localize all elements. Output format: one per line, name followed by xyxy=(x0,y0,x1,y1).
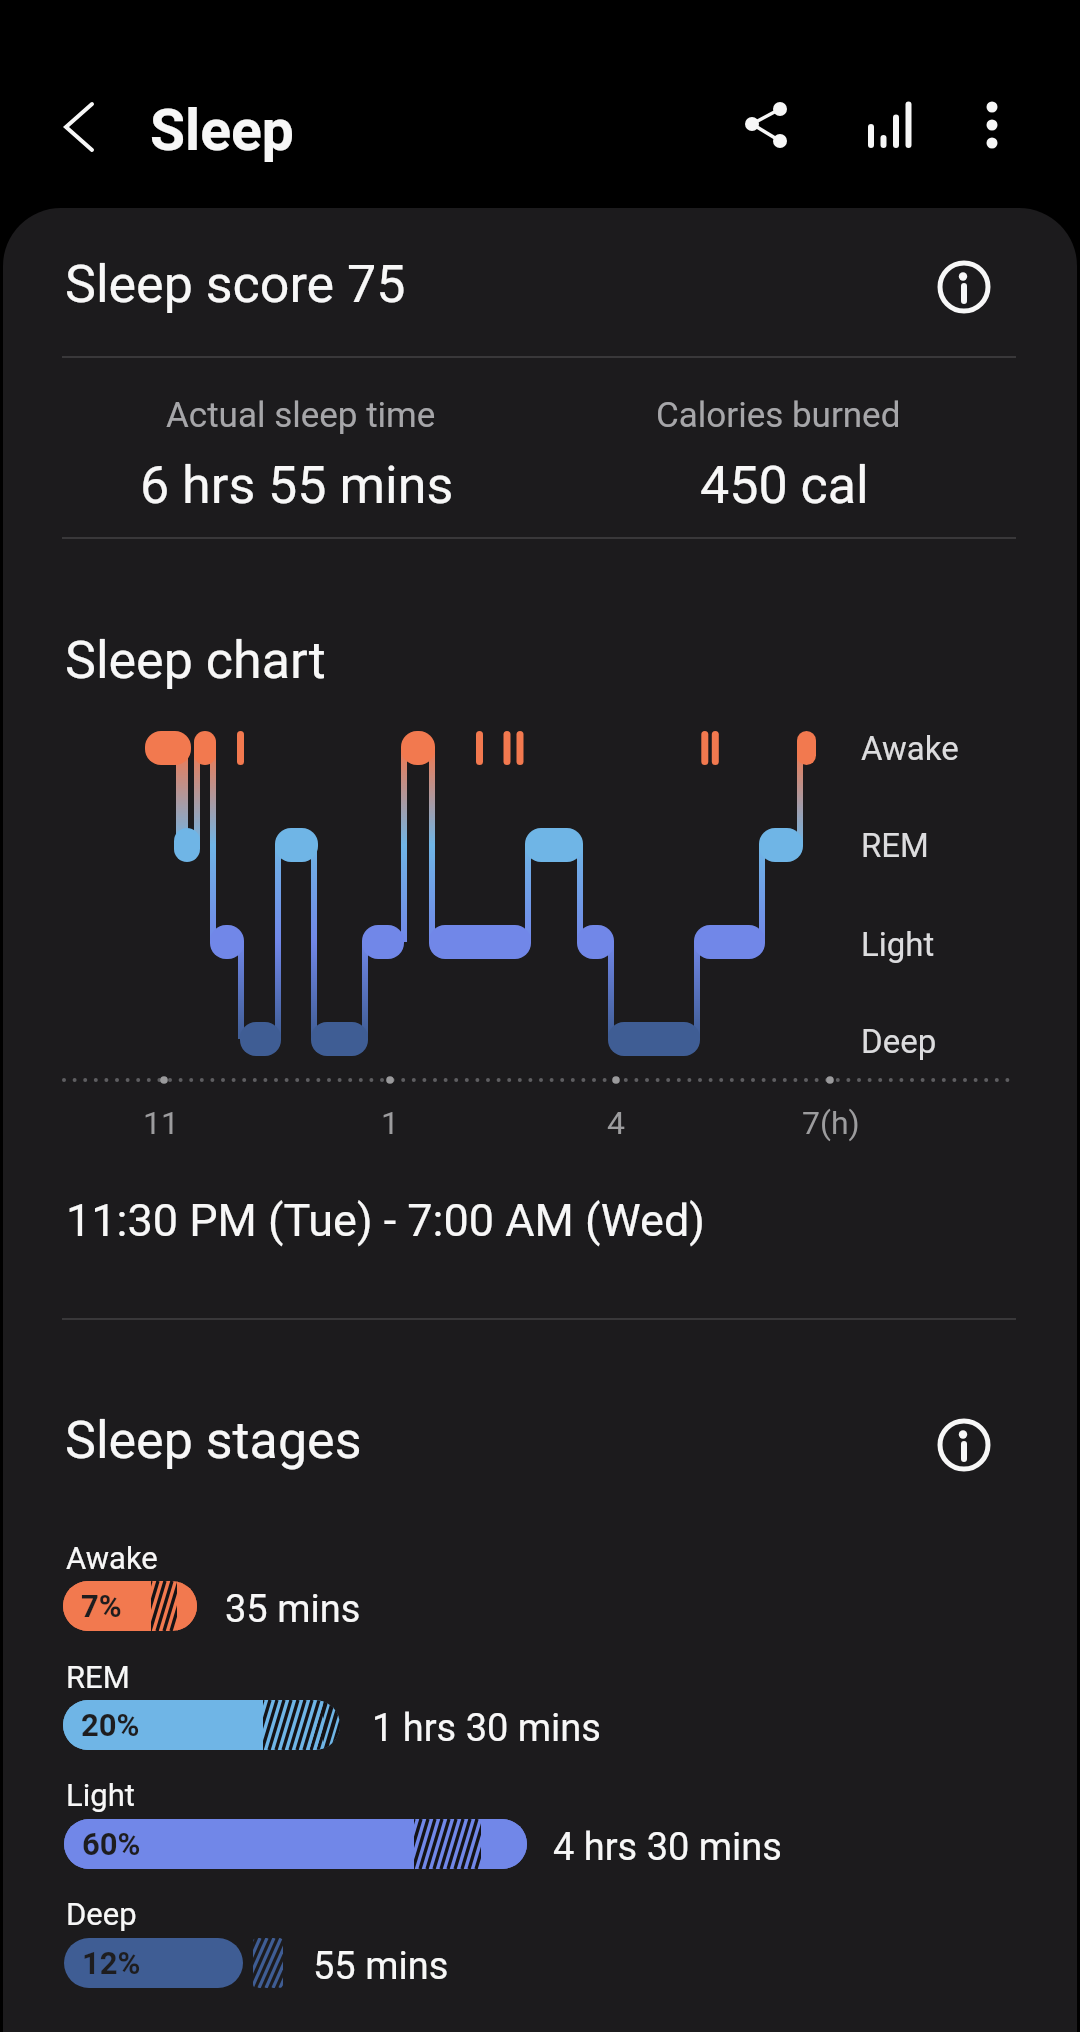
staticText: 4 hrs 30 mins xyxy=(553,1825,782,1870)
staticText: 450 cal xyxy=(700,455,869,516)
staticText: 1 hrs 30 mins xyxy=(372,1706,601,1751)
staticText: Calories burned xyxy=(656,395,901,436)
button[interactable]: 20% xyxy=(63,1700,340,1750)
staticText: 6 hrs 55 mins xyxy=(140,455,454,516)
staticText: 7(h) xyxy=(802,1104,860,1142)
staticText: Actual sleep time xyxy=(166,395,436,436)
staticText: 1 xyxy=(381,1104,399,1142)
button[interactable] xyxy=(932,255,996,319)
staticText: 11 xyxy=(143,1104,179,1142)
staticText: 35 mins xyxy=(225,1587,361,1632)
staticText: Light xyxy=(66,1777,135,1813)
staticText: Sleep chart xyxy=(65,630,326,691)
staticText: Light xyxy=(861,925,935,964)
staticText: 55 mins xyxy=(313,1944,449,1989)
staticText: 4 xyxy=(607,1104,625,1142)
staticText: Sleep score 75 xyxy=(65,254,406,315)
staticText: Deep xyxy=(66,1896,137,1932)
staticText: 11:30 PM (Tue) - 7:00 AM (Wed) xyxy=(66,1194,706,1247)
staticText: Deep xyxy=(861,1022,937,1061)
staticText: Sleep stages xyxy=(65,1410,362,1471)
staticText: 12% xyxy=(82,1945,141,1981)
staticText: 60% xyxy=(82,1826,141,1862)
button[interactable]: 60% xyxy=(64,1819,527,1869)
staticText: REM xyxy=(861,826,929,865)
button[interactable]: 12% xyxy=(64,1938,243,1988)
staticText: Sleep xyxy=(150,97,294,164)
button[interactable] xyxy=(960,90,1024,160)
staticText: 7% xyxy=(81,1588,122,1624)
button[interactable] xyxy=(932,1413,996,1477)
staticText: REM xyxy=(66,1659,130,1695)
staticText: 20% xyxy=(81,1707,140,1743)
button[interactable]: 7% xyxy=(63,1581,197,1631)
staticText: Awake xyxy=(66,1540,158,1576)
button[interactable] xyxy=(40,85,125,170)
staticText: Awake xyxy=(861,729,959,768)
button[interactable] xyxy=(855,90,925,160)
button[interactable] xyxy=(730,90,800,160)
